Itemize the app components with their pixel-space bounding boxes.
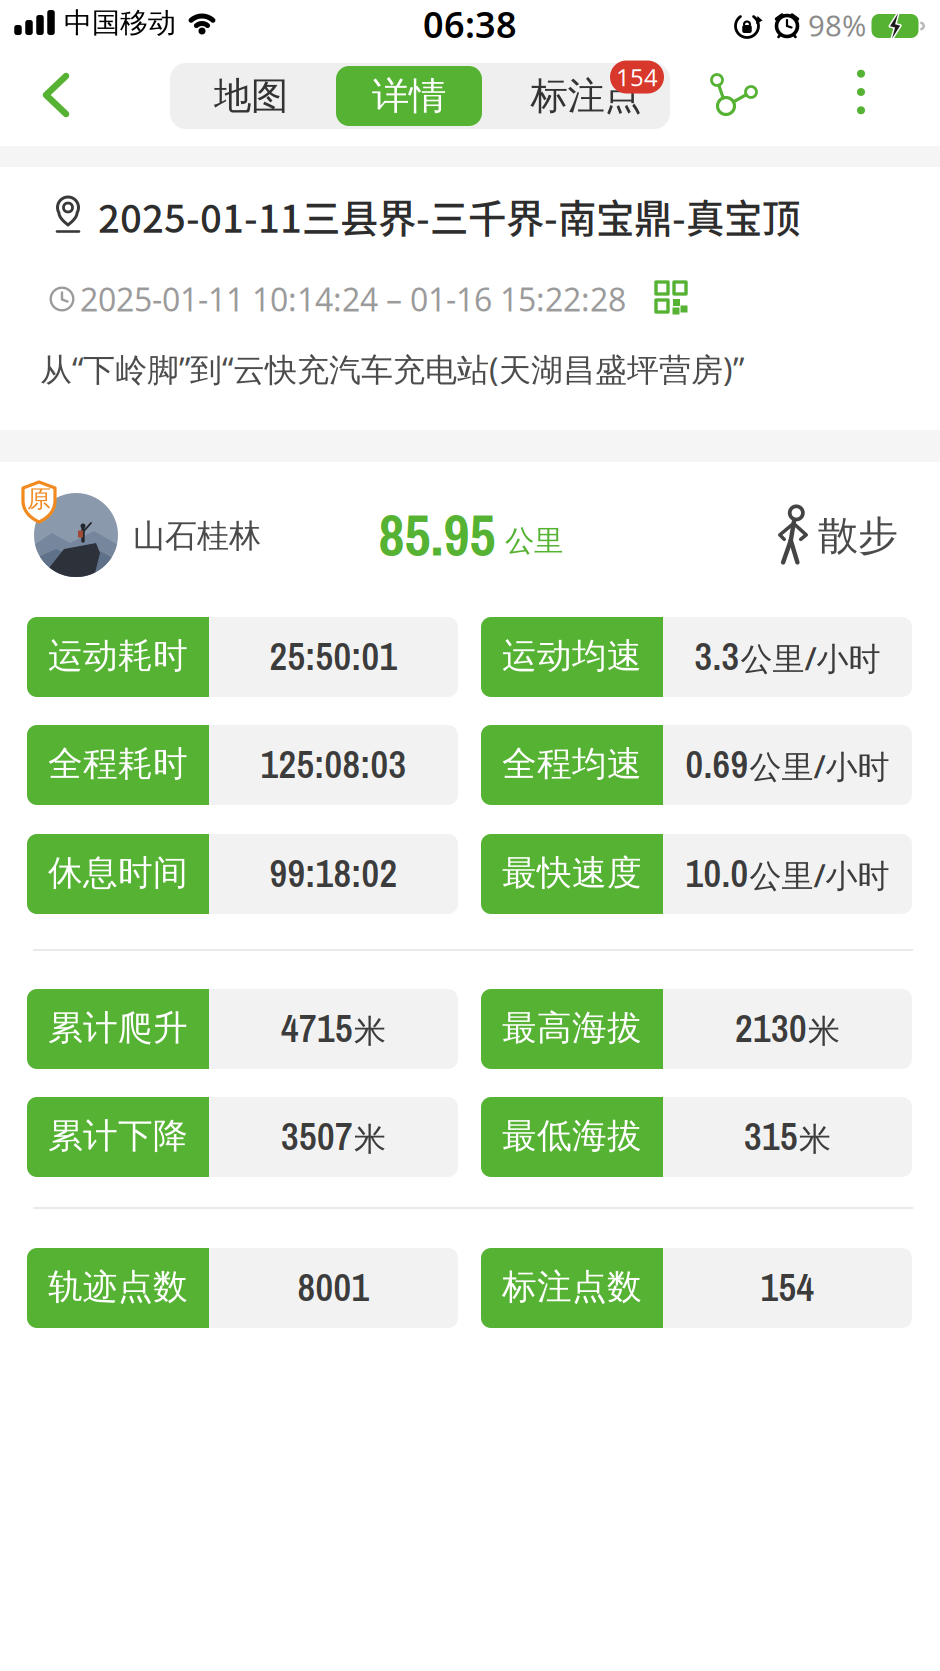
staticText: 8001 — [297, 1261, 369, 1313]
staticText: 全程耗时 — [48, 743, 188, 785]
staticText: 标注点数 — [502, 1266, 642, 1308]
staticText: 2025-01-11三县界-三千界-南宝鼎-真宝顶 — [98, 188, 800, 244]
staticText: 99:18:02 — [269, 847, 397, 899]
staticText: 累计爬升 — [48, 1007, 188, 1049]
staticText: 25:50:01 — [269, 630, 397, 682]
staticText: 2130 — [735, 1002, 807, 1054]
staticText: 10.0 — [685, 847, 748, 899]
staticText: 累计下降 — [48, 1115, 188, 1157]
staticText: 详情 — [372, 73, 446, 119]
staticText: 从“下岭脚”到“云快充汽车充电站(天湖昌盛坪营房)” — [40, 348, 744, 390]
staticText: 标注点 — [530, 73, 641, 119]
staticText: 公里/小时 — [749, 854, 889, 896]
staticText: 米 — [354, 1012, 386, 1051]
staticText: 4715 — [281, 1002, 353, 1054]
staticText: 休息时间 — [48, 852, 188, 894]
button[interactable]: 更多 — [843, 56, 879, 128]
staticText: 米 — [354, 1120, 386, 1159]
staticText: 轨迹点数 — [48, 1266, 188, 1308]
staticText: 315 — [744, 1110, 798, 1162]
staticText: 米 — [799, 1120, 831, 1159]
button[interactable]: 二维码 — [648, 274, 694, 320]
button[interactable]: 地图 — [171, 63, 331, 129]
staticText: 公里/小时 — [740, 637, 880, 679]
staticText: 运动耗时 — [48, 635, 188, 677]
button[interactable]: 用户头像 — [34, 493, 118, 577]
staticText: 85.95 — [378, 497, 495, 573]
button[interactable]: 标注点 — [498, 63, 673, 129]
staticText: 06:38 — [423, 0, 517, 48]
button[interactable]: 详情 — [336, 66, 482, 126]
staticText: 全程均速 — [502, 743, 642, 785]
staticText: 散步 — [818, 511, 898, 560]
staticText: 最高海拔 — [502, 1007, 642, 1049]
staticText: 3507 — [281, 1110, 353, 1162]
staticText: 154 — [760, 1261, 814, 1313]
staticText: 运动均速 — [502, 635, 642, 677]
staticText: 原 — [27, 484, 51, 514]
staticText: 125:08:03 — [260, 738, 406, 790]
staticText: 米 — [808, 1012, 840, 1051]
button[interactable]: 返回 — [28, 58, 84, 132]
staticText: 154 — [616, 61, 658, 93]
staticText: 山石桂林 — [133, 516, 261, 556]
button[interactable]: 轨迹 — [699, 63, 769, 127]
staticText: 最低海拔 — [502, 1115, 642, 1157]
staticText: 3.3 — [694, 630, 739, 682]
staticText: 地图 — [214, 73, 288, 119]
staticText: 2025-01-11 10:14:24 – 01-16 15:22:28 — [80, 278, 626, 320]
staticText: 98% — [808, 5, 866, 44]
staticText: 0.69 — [685, 738, 748, 790]
staticText: 公里/小时 — [749, 745, 889, 787]
staticText: 公里 — [505, 523, 563, 559]
staticText: 最快速度 — [502, 852, 642, 894]
staticText: 中国移动 — [64, 6, 176, 40]
